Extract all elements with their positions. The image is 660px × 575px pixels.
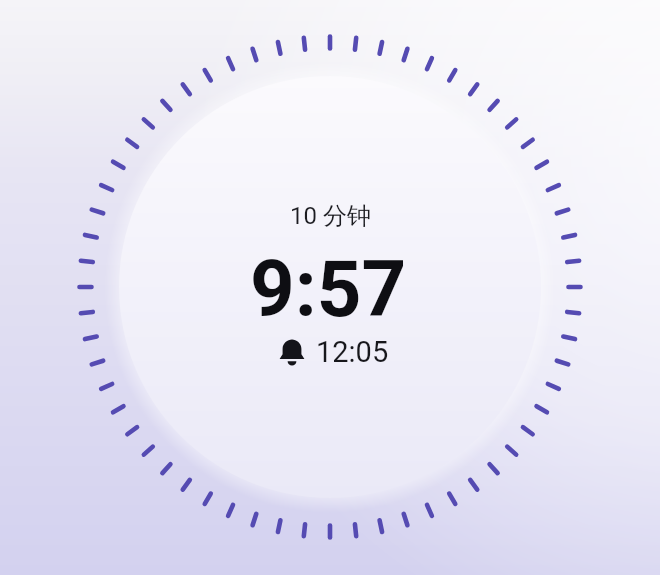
- staticText: 12:05: [316, 335, 389, 369]
- staticText: 9:57: [250, 244, 407, 335]
- button[interactable]: 12:05: [279, 335, 389, 369]
- staticText: 10 分钟: [290, 201, 371, 231]
